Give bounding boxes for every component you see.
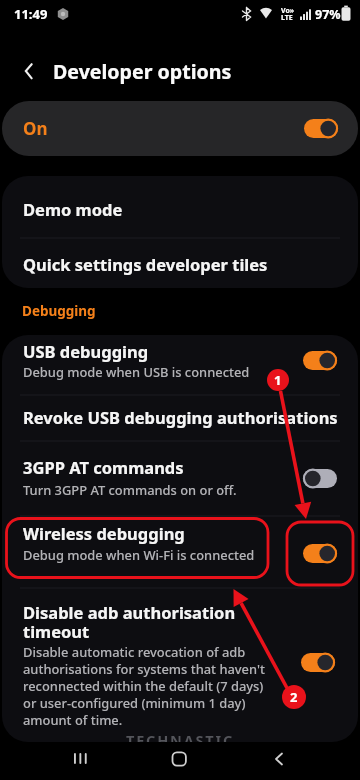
staticText: 97% <box>315 6 341 23</box>
staticText: Debugging <box>22 302 96 320</box>
button[interactable]: USB debugging <box>2 335 358 395</box>
staticText: LTE <box>281 13 293 23</box>
staticText: 1 <box>274 371 282 389</box>
staticText: On <box>23 117 48 140</box>
staticText: 2 <box>290 688 298 706</box>
staticText: USB debugging <box>23 340 149 362</box>
staticText: authorisations for systems that haven't <box>23 660 265 678</box>
button[interactable] <box>300 540 340 566</box>
staticText: Developer options <box>53 58 232 85</box>
button[interactable] <box>298 649 338 675</box>
button[interactable] <box>300 465 340 491</box>
button[interactable]: Disable adb authorisation <box>2 588 358 742</box>
staticText: Vo» <box>281 6 295 16</box>
button[interactable] <box>12 58 44 86</box>
button[interactable] <box>301 115 341 141</box>
staticText: Debug mode when Wi-Fi is connected <box>23 546 255 564</box>
staticText: 3GPP AT commands <box>23 456 184 478</box>
staticText: TECHNASTIC <box>126 730 235 750</box>
button[interactable]: Revoke USB debugging authorisations <box>2 395 358 441</box>
button[interactable]: 3GPP AT commands <box>2 441 358 516</box>
button[interactable]: Quick settings developer tiles <box>2 238 358 288</box>
staticText: Disable automatic revocation of adb <box>23 643 246 661</box>
button[interactable]: Demo mode <box>2 176 358 238</box>
staticText: Quick settings developer tiles <box>23 253 268 275</box>
staticText: Demo mode <box>23 198 123 220</box>
button[interactable]: Wireless debugging <box>2 516 358 588</box>
staticText: Disable adb authorisation <box>23 601 236 623</box>
staticText: 11:49 <box>14 5 48 23</box>
staticText: Turn 3GPP AT commands on or off. <box>23 481 237 499</box>
staticText: reconnected within the default (7 days) <box>23 677 264 695</box>
button[interactable] <box>161 746 197 776</box>
button[interactable] <box>261 746 297 776</box>
staticText: Wireless debugging <box>23 522 185 544</box>
button[interactable]: On <box>2 101 358 156</box>
staticText: amount of time. <box>23 711 123 729</box>
button[interactable] <box>62 746 98 776</box>
staticText: or user-configured (minimum 1 day) <box>23 694 246 712</box>
staticText: Debug mode when USB is connected <box>23 363 250 381</box>
button[interactable] <box>300 347 340 373</box>
staticText: Revoke USB debugging authorisations <box>23 406 338 428</box>
staticText: timeout <box>23 620 90 642</box>
